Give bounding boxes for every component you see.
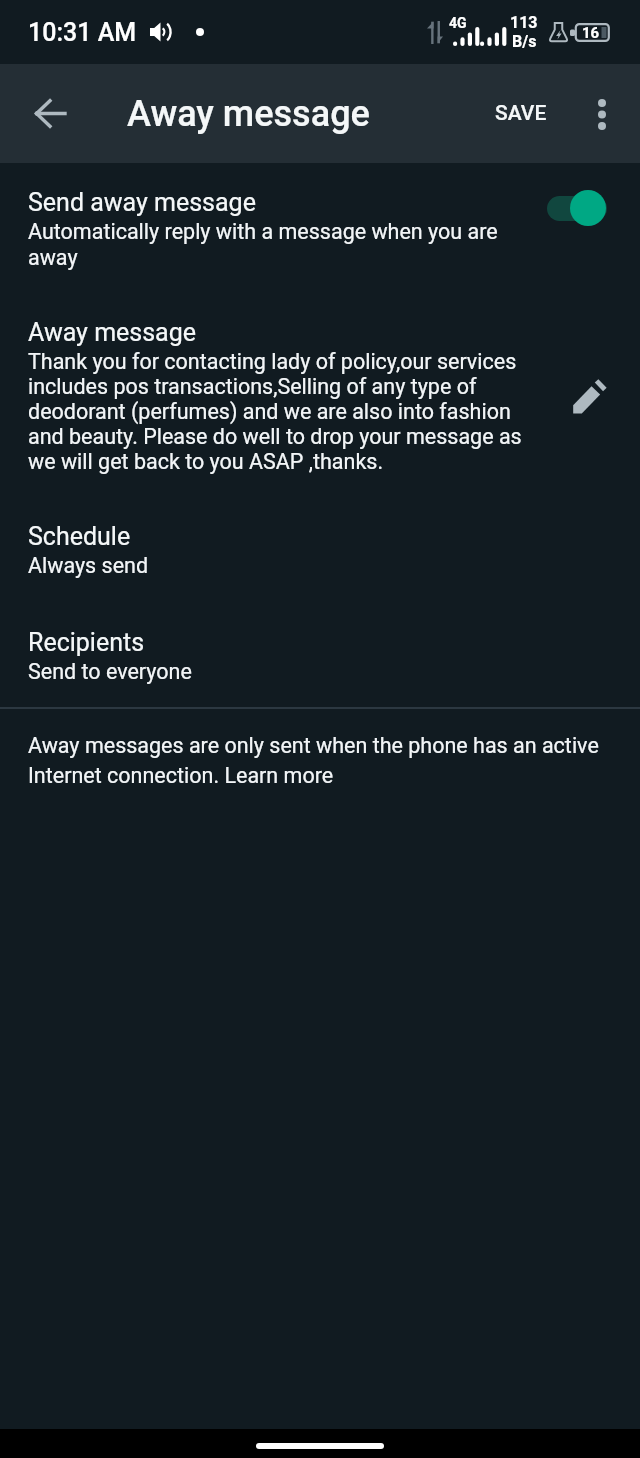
staticText: 16 bbox=[582, 24, 600, 42]
staticText: Send away message bbox=[28, 188, 256, 217]
staticText: 4G bbox=[449, 15, 467, 31]
staticText: 10:31 AM bbox=[28, 18, 137, 47]
button[interactable]: Schedule bbox=[0, 508, 640, 594]
staticText: Thank you for contacting lady of policy,… bbox=[28, 349, 536, 474]
button[interactable]: Edit away message bbox=[559, 367, 619, 427]
staticText: Schedule bbox=[28, 522, 131, 551]
staticText: Always send bbox=[28, 553, 149, 578]
button[interactable]: Send away message bbox=[539, 182, 615, 234]
staticText: 113 bbox=[510, 13, 538, 32]
button[interactable]: Away message bbox=[0, 312, 640, 482]
staticText: Away message bbox=[28, 318, 197, 347]
staticText: Recipients bbox=[28, 628, 145, 657]
staticText: SAVE bbox=[495, 101, 547, 126]
staticText: Automatically reply with a message when … bbox=[28, 219, 520, 270]
staticText: Away message bbox=[127, 93, 370, 135]
button[interactable]: Navigate up bbox=[6, 64, 93, 163]
staticText: Away messages are only sent when the pho… bbox=[28, 733, 612, 788]
button[interactable]: Send away message bbox=[0, 170, 640, 288]
button[interactable]: SAVE bbox=[478, 64, 564, 163]
button[interactable]: More options bbox=[564, 64, 640, 163]
staticText: B/s bbox=[512, 32, 537, 51]
staticText: Send to everyone bbox=[28, 659, 192, 684]
button[interactable]: Recipients bbox=[0, 614, 640, 700]
